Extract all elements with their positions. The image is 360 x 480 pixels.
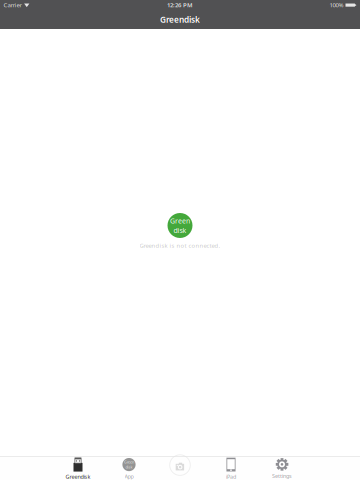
staticText: Greendisk is not connected. [139, 241, 220, 249]
staticText: 12:26 PM [167, 1, 193, 9]
staticText: Greendisk [160, 14, 200, 25]
staticText: 100% [329, 1, 343, 9]
staticText: Green [124, 459, 134, 465]
button[interactable]: Settings [256, 456, 307, 480]
staticText: App [124, 473, 133, 480]
staticText: Settings [272, 472, 292, 479]
staticText: Greendisk [65, 473, 90, 480]
button[interactable]: App [103, 456, 154, 480]
button[interactable]: Camera [154, 456, 205, 480]
staticText: Green [170, 216, 190, 225]
staticText: disk [125, 465, 132, 470]
staticText: disk [173, 225, 186, 235]
staticText: Carrier [3, 1, 21, 9]
button[interactable]: iPad [205, 456, 256, 480]
button[interactable]: Greendisk [52, 456, 103, 480]
staticText: iPad [226, 473, 236, 480]
